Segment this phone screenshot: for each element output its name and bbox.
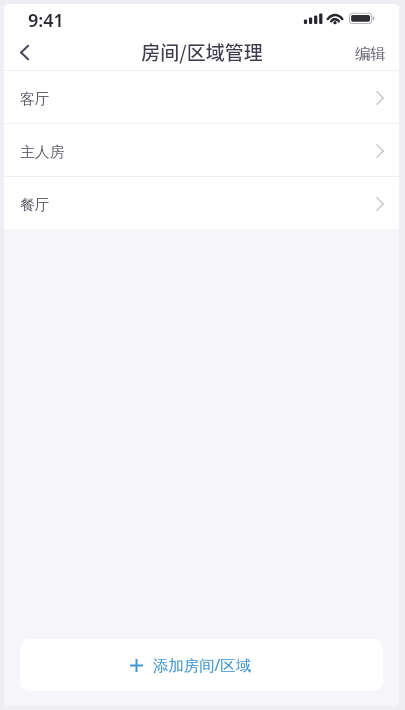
button[interactable]: 主人房 xyxy=(4,124,399,176)
staticText: 主人房 xyxy=(20,143,65,162)
staticText: 编辑 xyxy=(355,44,386,63)
button[interactable]: 编辑 xyxy=(339,38,399,69)
staticText: 9:41 xyxy=(28,8,64,33)
button[interactable]: 添加房间/区域 xyxy=(20,639,383,691)
button[interactable]: Back xyxy=(4,36,46,70)
button[interactable]: 客厅 xyxy=(4,71,399,123)
staticText: 添加房间/区域 xyxy=(153,655,252,676)
staticText: 餐厅 xyxy=(20,196,50,215)
button[interactable]: 餐厅 xyxy=(4,177,399,229)
staticText: 客厅 xyxy=(20,90,50,109)
staticText: 房间/区域管理 xyxy=(141,38,263,66)
